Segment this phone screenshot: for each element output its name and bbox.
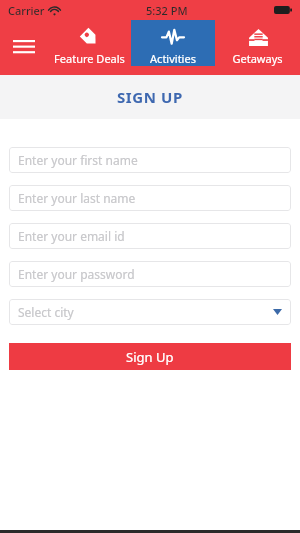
staticText: Enter your email id: [18, 228, 125, 244]
staticText: Getaways: [232, 51, 283, 66]
button[interactable]: Menu: [0, 20, 47, 75]
button[interactable]: Enter your password: [9, 261, 291, 287]
button[interactable]: Sign Up: [9, 343, 291, 370]
staticText: 5:32 PM: [146, 3, 188, 18]
staticText: Select city: [18, 304, 74, 320]
button[interactable]: Feature Deals: [47, 20, 131, 66]
button[interactable]: Getaways: [215, 20, 300, 66]
staticText: Enter your first name: [18, 152, 138, 168]
staticText: SIGN UP: [117, 87, 183, 107]
button[interactable]: Select city: [9, 299, 291, 325]
staticText: Feature Deals: [54, 51, 125, 66]
staticText: Enter your password: [18, 266, 135, 282]
button[interactable]: Activities: [131, 20, 215, 66]
staticText: Enter your last name: [18, 190, 136, 206]
button[interactable]: Enter your email id: [9, 223, 291, 249]
button[interactable]: Enter your first name: [9, 147, 291, 173]
staticText: Carrier: [8, 3, 45, 18]
button[interactable]: Enter your last name: [9, 185, 291, 211]
staticText: Sign Up: [126, 348, 174, 366]
staticText: Activities: [150, 51, 196, 66]
